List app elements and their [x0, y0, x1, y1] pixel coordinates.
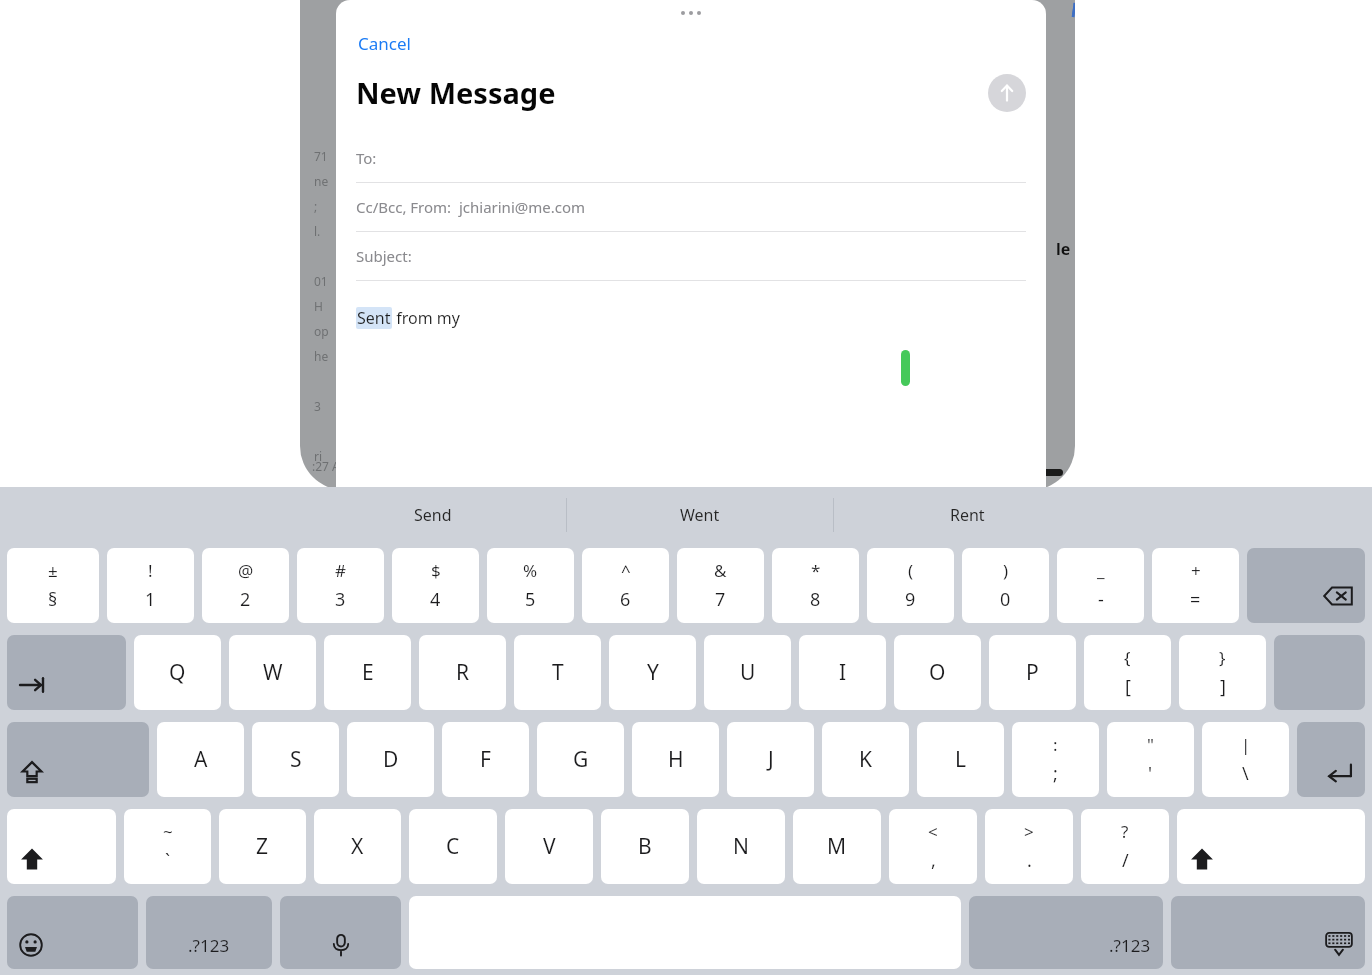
button[interactable]: shift: [1177, 809, 1365, 884]
staticText: ": [1147, 733, 1154, 756]
staticText: New Message: [356, 73, 556, 112]
button[interactable]: %5: [487, 548, 574, 623]
button[interactable]: _-: [1057, 548, 1144, 623]
button[interactable]: *8: [772, 548, 859, 623]
button[interactable]: B: [601, 809, 689, 884]
button[interactable]: Went: [567, 487, 833, 542]
button[interactable]: U: [704, 635, 791, 710]
button[interactable]: !1: [107, 548, 194, 623]
staticText: Rent: [950, 504, 985, 526]
button[interactable]: L: [917, 722, 1004, 797]
button[interactable]: ^6: [582, 548, 669, 623]
staticText: 9: [905, 587, 916, 612]
staticText: 7: [715, 587, 726, 612]
button[interactable]: return: [1297, 722, 1365, 797]
button[interactable]: W: [229, 635, 316, 710]
button[interactable]: To:: [336, 134, 1046, 182]
button[interactable]: ~`: [124, 809, 211, 884]
button[interactable]: Subject:: [336, 232, 1046, 280]
button[interactable]: caps: [7, 722, 149, 797]
staticText: 5: [525, 587, 536, 612]
staticText: ]: [1220, 674, 1226, 699]
button[interactable]: mic: [280, 896, 401, 969]
button[interactable]: @2: [202, 548, 289, 623]
button[interactable]: }]: [1179, 635, 1266, 710]
staticText: W: [263, 658, 283, 687]
button[interactable]: <,: [889, 809, 977, 884]
button[interactable]: ±§: [7, 548, 99, 623]
button[interactable]: D: [347, 722, 434, 797]
staticText: he: [314, 348, 329, 364]
button[interactable]: S: [252, 722, 339, 797]
staticText: +: [1191, 559, 1201, 582]
button[interactable]: Z: [219, 809, 306, 884]
button[interactable]: P: [989, 635, 1076, 710]
button[interactable]: >.: [985, 809, 1073, 884]
staticText: (: [908, 559, 914, 582]
staticText: 8: [810, 587, 821, 612]
staticText: from my: [392, 307, 460, 329]
button[interactable]: &7: [677, 548, 764, 623]
button[interactable]: A: [157, 722, 244, 797]
button[interactable]: )0: [962, 548, 1049, 623]
staticText: 0: [1000, 587, 1011, 612]
button[interactable]: $4: [392, 548, 479, 623]
staticText: 4: [430, 587, 441, 612]
staticText: M: [827, 832, 847, 861]
staticText: .?123: [188, 934, 230, 957]
button[interactable]: emoji: [7, 896, 138, 969]
button[interactable]: +=: [1152, 548, 1239, 623]
staticText: =: [1190, 587, 1201, 612]
button[interactable]: Q: [134, 635, 221, 710]
button[interactable]: bksp: [1247, 548, 1365, 623]
button[interactable]: shift: [7, 809, 116, 884]
button[interactable]: H: [632, 722, 719, 797]
button[interactable]: :;: [1012, 722, 1099, 797]
button[interactable]: Cancel: [356, 26, 413, 61]
button[interactable]: tab: [7, 635, 126, 710]
button[interactable]: N: [697, 809, 785, 884]
staticText: Went: [680, 504, 720, 526]
button[interactable]: E: [324, 635, 411, 710]
button[interactable]: F: [442, 722, 529, 797]
button[interactable]: Cc/Bcc, From: jchiarini@me.com: [336, 183, 1046, 231]
staticText: *: [811, 559, 821, 582]
button[interactable]: G: [537, 722, 624, 797]
button[interactable]: V: [505, 809, 593, 884]
button[interactable]: .?123: [969, 896, 1163, 969]
button[interactable]: X: [314, 809, 401, 884]
button[interactable]: Send: [300, 487, 566, 542]
button[interactable]: R: [419, 635, 506, 710]
button[interactable]: |\: [1202, 722, 1289, 797]
button[interactable]: #3: [297, 548, 384, 623]
button[interactable]: "': [1107, 722, 1194, 797]
button[interactable]: C: [409, 809, 497, 884]
staticText: Cc/Bcc, From: jchiarini@me.com: [356, 197, 586, 217]
button[interactable]: Y: [609, 635, 696, 710]
staticText: B: [638, 832, 652, 861]
staticText: @: [238, 559, 254, 582]
button[interactable]: T: [514, 635, 601, 710]
staticText: >: [1024, 820, 1034, 843]
staticText: C: [446, 832, 460, 861]
button[interactable]: O: [894, 635, 981, 710]
staticText: R: [456, 658, 470, 687]
staticText: S: [290, 745, 302, 774]
button[interactable]: I: [799, 635, 886, 710]
button[interactable]: K: [822, 722, 909, 797]
button[interactable]: M: [793, 809, 881, 884]
staticText: P: [1026, 658, 1039, 687]
button[interactable]: Send: [988, 74, 1026, 112]
button[interactable]: ?/: [1081, 809, 1169, 884]
staticText: D: [383, 745, 399, 774]
button[interactable]: .?123: [146, 896, 272, 969]
button[interactable]: {[: [1084, 635, 1171, 710]
staticText: 1: [145, 587, 156, 612]
button[interactable]: (9: [867, 548, 954, 623]
staticText: 6: [620, 587, 631, 612]
button[interactable]: kbd: [1171, 896, 1365, 969]
button[interactable]: J: [727, 722, 814, 797]
button[interactable]: Rent: [834, 487, 1100, 542]
